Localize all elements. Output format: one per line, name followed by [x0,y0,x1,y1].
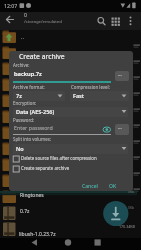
staticText: 170.34KB [119,224,135,229]
staticText: 7z [16,92,22,99]
staticText: 0Kb [128,205,135,210]
staticText: Compression level: [71,84,110,90]
staticText: .. [21,33,24,40]
button[interactable] [115,71,129,81]
staticText: Encryption: [13,100,37,106]
button[interactable] [0,30,141,46]
staticText: libush-1.0.23.7z [19,231,56,238]
staticText: Archive: [13,62,30,68]
button[interactable] [0,222,141,238]
staticText: Data (AES-256) [16,108,55,115]
button[interactable] [0,190,141,206]
staticText: Delete source files after compression [21,155,97,161]
staticText: Fast [73,92,84,99]
button[interactable] [105,181,119,191]
button[interactable] [94,12,108,30]
button[interactable] [115,124,129,135]
staticText: OK [109,183,117,190]
button[interactable] [13,144,128,154]
staticText: No [16,145,24,152]
staticText: 12:07 [4,2,18,9]
staticText: Enter password [14,124,53,131]
staticText: 0Kb [128,189,135,194]
button[interactable] [100,124,112,134]
button[interactable] [124,12,138,30]
staticText: ... [118,71,122,77]
staticText: Ringtones [20,192,44,199]
staticText: /storage/emulated [24,18,62,24]
button[interactable] [90,238,104,250]
staticText: backup.7z [14,70,42,78]
staticText: 0.7z [20,208,30,215]
staticText: 0 [24,11,27,18]
button[interactable] [108,12,122,30]
staticText: Password: [13,117,35,123]
button[interactable] [103,201,129,227]
button[interactable] [13,107,128,117]
button[interactable] [11,164,121,174]
button[interactable] [28,238,42,250]
staticText: Create archive [19,52,65,61]
button[interactable] [11,154,121,164]
staticText: Archive format: [13,84,45,90]
staticText: ... [118,124,122,130]
button[interactable] [0,12,24,30]
staticText: Cancel [82,183,98,190]
staticText: Create separate archive [21,165,70,171]
staticText: Split into volumes: [13,136,51,142]
button[interactable] [13,91,65,101]
button[interactable] [0,206,141,222]
button[interactable] [78,181,100,191]
button[interactable] [61,238,75,250]
button[interactable] [70,91,129,101]
